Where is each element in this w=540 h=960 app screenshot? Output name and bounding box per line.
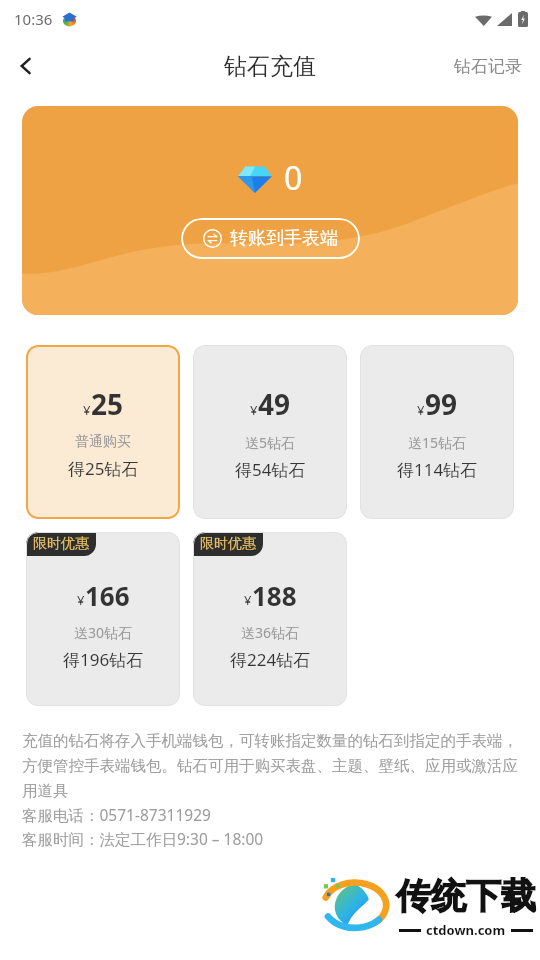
staticText: 送5钻石 [245, 433, 296, 452]
staticText: 钻石记录 [454, 56, 522, 77]
staticText: 传统下载 [396, 874, 536, 918]
staticText: 188 [252, 578, 297, 613]
staticText: 送30钻石 [74, 623, 133, 642]
staticText: 166 [85, 578, 130, 613]
button[interactable]: 钻石记录 [436, 46, 540, 87]
staticText: 49 [258, 385, 291, 423]
staticText: ¥ [83, 401, 91, 419]
button[interactable]: ¥ [193, 345, 347, 519]
staticText: ¥ [77, 591, 85, 609]
staticText: 99 [425, 385, 458, 423]
button[interactable]: ¥ [360, 345, 514, 519]
staticText: 客服时间：法定工作日9:30 – 18:00 [22, 828, 264, 849]
staticText: 普通购买 [75, 433, 131, 451]
staticText: 充值的钻石将存入手机端钱包，可转账指定数量的钻石到指定的手表端，方便管控手表端钱… [22, 731, 518, 800]
staticText: 得224钻石 [230, 648, 311, 671]
button[interactable]: Back [0, 40, 52, 92]
staticText: ¥ [417, 401, 425, 419]
staticText: 得25钻石 [68, 457, 139, 480]
staticText: 限时优惠 [33, 535, 89, 553]
staticText: 限时优惠 [200, 535, 256, 553]
button[interactable]: ¥ [26, 532, 180, 706]
staticText: ctdown.com [426, 921, 506, 939]
staticText: 25 [91, 385, 124, 423]
staticText: 10:36 [14, 9, 53, 29]
staticText: 转账到手表端 [230, 227, 338, 250]
staticText: 得114钻石 [397, 458, 478, 481]
staticText: 0 [284, 156, 303, 200]
button[interactable]: 转账到手表端 [181, 218, 360, 259]
staticText: 钻石充值 [224, 52, 316, 81]
staticText: ¥ [250, 401, 258, 419]
staticText: 得54钻石 [235, 458, 306, 481]
staticText: 送15钻石 [408, 433, 467, 452]
button[interactable]: ¥ [26, 345, 180, 519]
button[interactable]: ¥ [193, 532, 347, 706]
staticText: 客服电话：0571-87311929 [22, 804, 211, 825]
staticText: ¥ [244, 591, 252, 609]
staticText: 送36钻石 [241, 623, 300, 642]
staticText: 得196钻石 [63, 648, 144, 671]
